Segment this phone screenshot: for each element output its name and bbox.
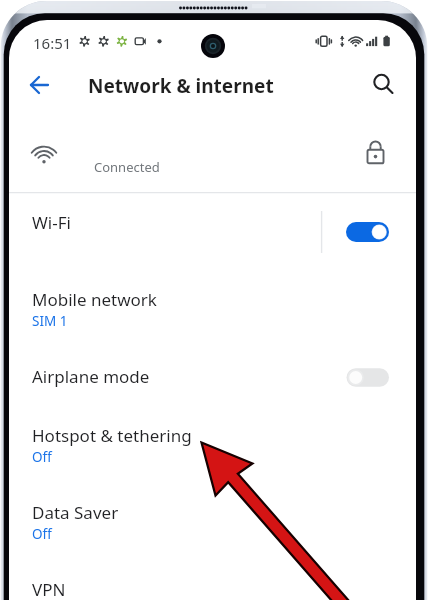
staticText: Mobile network bbox=[32, 288, 157, 311]
staticText: VPN bbox=[32, 578, 66, 600]
staticText: Connected bbox=[94, 158, 160, 176]
staticText: Off bbox=[32, 448, 52, 466]
button[interactable]: Mobile network bbox=[9, 271, 416, 348]
button[interactable]: Search bbox=[368, 69, 400, 101]
staticText: Network & internet bbox=[88, 73, 274, 99]
button[interactable]: Airplane mode bbox=[9, 348, 416, 407]
button[interactable]: Connected bbox=[9, 112, 416, 192]
button[interactable]: Navigate up bbox=[24, 69, 56, 101]
button[interactable]: Data Saver bbox=[9, 484, 416, 561]
button[interactable]: Hotspot & tethering bbox=[9, 407, 416, 484]
staticText: 16:51 bbox=[33, 33, 72, 53]
staticText: SIM 1 bbox=[32, 312, 68, 330]
staticText: Airplane mode bbox=[32, 365, 150, 388]
staticText: Wi-Fi bbox=[32, 211, 71, 234]
staticText: Off bbox=[32, 525, 52, 543]
button[interactable]: VPN bbox=[9, 561, 416, 600]
staticText: Hotspot & tethering bbox=[32, 424, 192, 447]
staticText: Data Saver bbox=[32, 501, 119, 524]
button[interactable]: Wi-Fi bbox=[9, 194, 416, 271]
button[interactable]: Airplane mode off bbox=[344, 365, 392, 389]
button[interactable]: Wi-Fi on bbox=[344, 219, 392, 243]
